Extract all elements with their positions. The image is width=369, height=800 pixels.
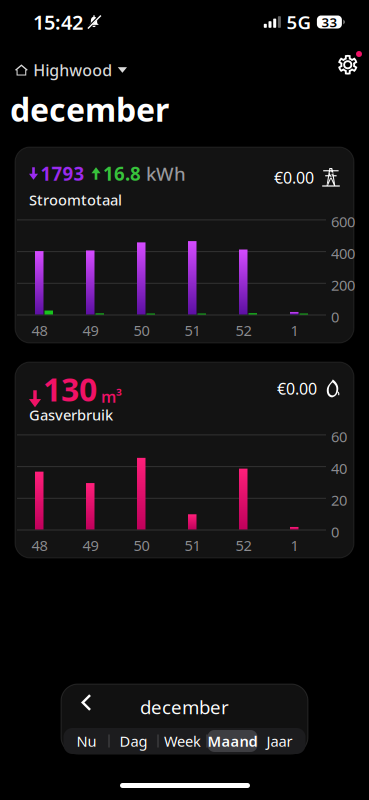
staticText: 600	[331, 212, 355, 231]
staticText: december	[10, 88, 169, 130]
staticText: Nu	[76, 731, 96, 751]
staticText: 0	[331, 307, 339, 326]
staticText: Gasverbruik	[29, 405, 113, 424]
staticText: 48	[31, 320, 47, 340]
staticText: 33	[321, 13, 337, 31]
staticText: Maand	[207, 731, 257, 751]
staticText: 5G	[286, 10, 311, 34]
button[interactable]: Settings	[333, 53, 363, 87]
staticText: Dag	[119, 731, 147, 751]
staticText: Jaar	[266, 731, 292, 751]
button[interactable]: Maand	[207, 730, 257, 752]
staticText: €0.00	[277, 378, 317, 399]
staticText: 200	[331, 275, 355, 295]
button[interactable]: Nu	[64, 730, 108, 752]
staticText: 49	[82, 320, 98, 340]
staticText: €0.00	[274, 167, 314, 188]
staticText: 15:42	[33, 9, 83, 35]
staticText: 52	[235, 320, 251, 340]
staticText: 50	[133, 320, 149, 340]
staticText: Week	[164, 731, 201, 751]
staticText: 49	[82, 535, 98, 555]
staticText: 400	[331, 244, 355, 263]
button[interactable]: Week	[158, 730, 206, 752]
staticText: Stroomtotaal	[29, 190, 122, 209]
staticText: 0	[331, 522, 339, 541]
staticText: 48	[31, 535, 47, 555]
button[interactable]: Highwood	[15, 54, 127, 86]
staticText: 20	[331, 490, 347, 510]
button[interactable]: Back	[71, 687, 101, 717]
staticText: 51	[184, 320, 200, 340]
staticText: kWh	[146, 161, 186, 186]
staticText: 130	[43, 368, 97, 410]
staticText: 50	[133, 535, 149, 555]
staticText: 52	[235, 535, 251, 555]
staticText: m³	[101, 386, 122, 407]
staticText: 16.8	[103, 161, 141, 186]
staticText: 40	[331, 459, 347, 478]
staticText: december	[140, 694, 229, 719]
staticText: 1	[290, 320, 298, 340]
staticText: 51	[184, 535, 200, 555]
staticText: Highwood	[33, 59, 112, 81]
staticText: 1	[290, 535, 298, 555]
button[interactable]: Dag	[109, 730, 157, 752]
button[interactable]: Jaar	[257, 730, 301, 752]
staticText: 60	[331, 427, 347, 446]
staticText: 1793	[40, 161, 84, 186]
